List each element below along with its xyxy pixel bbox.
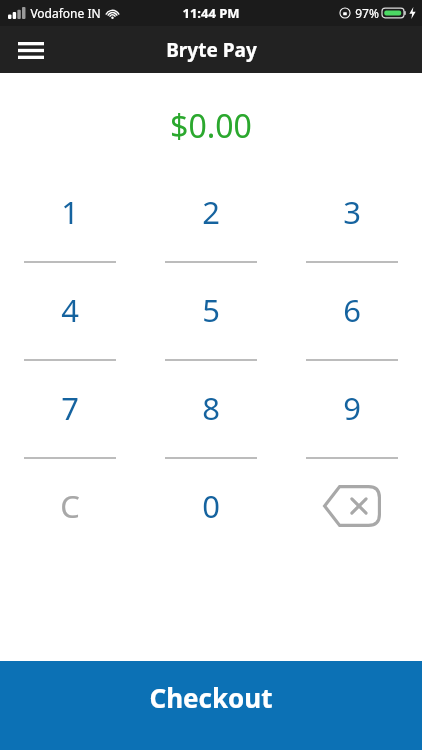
staticText: 11:44 PM xyxy=(182,4,240,22)
staticText: C xyxy=(60,485,80,527)
staticText: 5 xyxy=(202,289,220,331)
staticText: 6 xyxy=(343,289,361,331)
button[interactable]: 1 xyxy=(0,177,140,275)
staticText: $0.00 xyxy=(170,104,252,148)
button[interactable]: 2 xyxy=(140,177,281,275)
staticText: Vodafone IN xyxy=(30,5,101,21)
staticText: 8 xyxy=(202,387,220,429)
staticText: 0 xyxy=(202,485,220,527)
button[interactable]: 3 xyxy=(281,177,422,275)
button[interactable]: 7 xyxy=(0,373,140,471)
staticText: 9 xyxy=(343,387,361,429)
staticText: 4 xyxy=(61,289,79,331)
button[interactable]: 9 xyxy=(281,373,422,471)
staticText: 2 xyxy=(202,191,220,233)
button[interactable]: C xyxy=(0,471,140,569)
staticText: 7 xyxy=(61,387,79,429)
button[interactable]: 8 xyxy=(140,373,281,471)
staticText: 3 xyxy=(343,191,361,233)
button[interactable]: Checkout xyxy=(0,661,422,750)
button[interactable]: Open navigation menu xyxy=(12,31,50,69)
button[interactable]: Backspace xyxy=(281,471,422,569)
staticText: 97% xyxy=(355,5,379,21)
staticText: Checkout xyxy=(149,680,273,715)
button[interactable]: 5 xyxy=(140,275,281,373)
button[interactable]: 4 xyxy=(0,275,140,373)
staticText: Bryte Pay xyxy=(166,37,257,63)
button[interactable]: 0 xyxy=(140,471,281,569)
button[interactable]: 6 xyxy=(281,275,422,373)
staticText: 1 xyxy=(61,191,79,233)
